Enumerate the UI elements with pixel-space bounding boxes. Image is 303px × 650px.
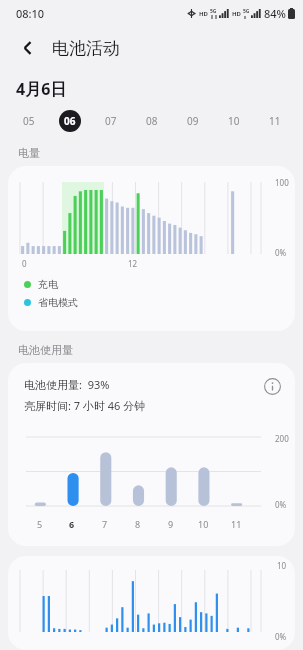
staticText: 10 [228, 114, 240, 128]
staticText: 200 [275, 433, 289, 444]
staticText: 电池使用量 [18, 343, 73, 357]
staticText: 6 [69, 518, 75, 530]
staticText: 11 [269, 114, 281, 128]
staticText: 84% [264, 6, 286, 21]
staticText: 5 [37, 518, 43, 530]
button[interactable]: 05 [8, 106, 49, 136]
staticText: 电池活动 [52, 38, 120, 59]
button[interactable]: 10 [213, 106, 254, 136]
staticText: 08:10 [16, 6, 45, 21]
staticText: 5G [210, 8, 217, 15]
button[interactable]: 09 [172, 106, 213, 136]
button[interactable]: 08 [131, 106, 172, 136]
staticText: 0% [275, 499, 287, 510]
staticText: 100 [275, 177, 289, 188]
staticText: 05 [23, 114, 35, 128]
staticText: 10 [198, 518, 209, 530]
staticText: 5G [243, 8, 250, 15]
staticText: 12 [128, 258, 138, 269]
staticText: 10 [277, 560, 287, 571]
staticText: 0 [22, 258, 27, 269]
staticText: 0% [275, 631, 287, 642]
button[interactable]: 06 [49, 106, 90, 136]
staticText: 电量 [18, 146, 40, 160]
staticText: 0% [275, 247, 287, 258]
staticText: 亮屏时间: 7 小时 46 分钟 [24, 398, 146, 413]
staticText: HD [232, 10, 241, 18]
button[interactable]: 返回 [12, 32, 44, 64]
button[interactable]: 信息 [261, 375, 283, 397]
staticText: 09 [187, 114, 199, 128]
staticText: 9 [168, 518, 174, 530]
staticText: 8 [135, 518, 141, 530]
button[interactable]: 07 [90, 106, 131, 136]
staticText: 省电模式 [38, 296, 78, 309]
staticText: 11 [231, 518, 242, 530]
staticText: 07 [105, 114, 117, 128]
staticText: 7 [102, 518, 108, 530]
staticText: 06 [64, 114, 76, 128]
staticText: HD [199, 10, 208, 18]
staticText: 充电 [38, 278, 58, 291]
staticText: 电池使用量: 93% [24, 377, 110, 392]
staticText: 08 [146, 114, 158, 128]
button[interactable]: 11 [254, 106, 295, 136]
staticText: 4月6日 [16, 78, 67, 100]
